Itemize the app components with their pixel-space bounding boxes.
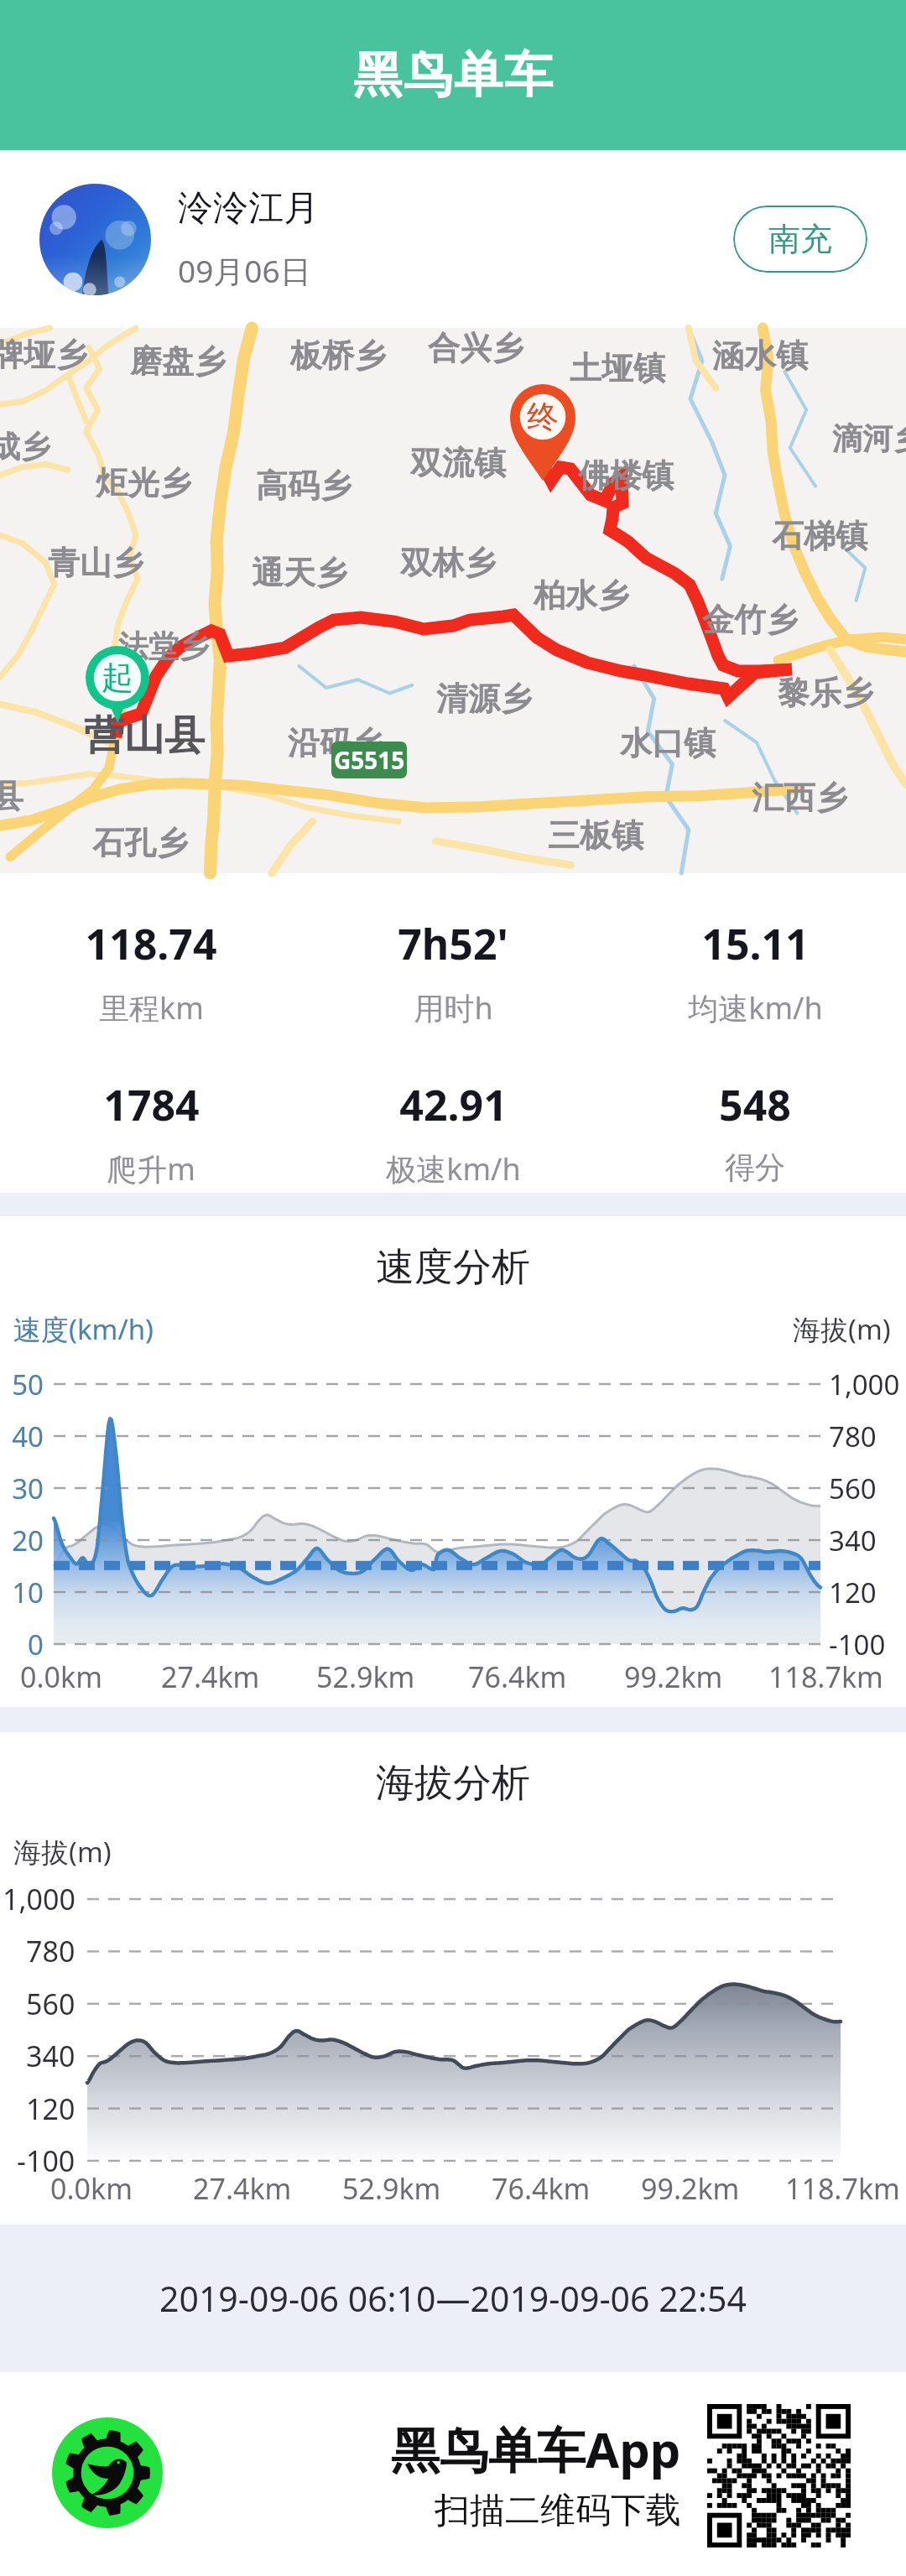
staticText: 终 [527,397,559,437]
staticText: 爬升m [107,1148,195,1189]
staticText: 磨盘乡 [130,341,226,382]
staticText: 0.0km [50,2169,133,2208]
staticText: 20 [12,1522,44,1559]
staticText: 27.4km [161,1657,260,1696]
button[interactable]: 118.74 [0,915,302,1028]
staticText: 滴河乡 [832,419,906,457]
staticText: -100 [829,1626,886,1663]
staticText: 52.9km [316,1657,415,1696]
staticText: 118.74 [85,915,217,972]
staticText: 金竹乡 [702,600,798,640]
staticText: 土垭镇 [570,348,665,388]
staticText: 柏水乡 [534,575,629,616]
other: 二维码 [707,2404,851,2547]
staticText: 780 [26,1932,75,1970]
staticText: 118.7km [785,2169,900,2208]
staticText: 76.4km [468,1657,567,1696]
staticText: 340 [829,1522,877,1559]
staticText: 三板镇 [548,815,643,856]
button[interactable]: 1784 [0,1076,302,1189]
staticText: 42.91 [399,1076,508,1133]
staticText: 09月06日 [178,249,311,292]
staticText: 涵水镇 [712,336,808,376]
staticText: 青山乡 [48,543,143,583]
staticText: 黑鸟单车 [352,44,554,106]
staticText: 清源乡 [436,679,532,719]
staticText: 1,000 [3,1880,75,1918]
staticText: 118.7km [768,1657,883,1696]
staticText: 石孔乡 [92,823,188,863]
staticText: 99.2km [624,1657,723,1696]
button[interactable]: 7h52' [302,915,604,1028]
staticText: 速度分析 [376,1243,530,1292]
button[interactable]: 黑鸟单车 logo [52,2417,163,2528]
staticText: 52.9km [342,2169,441,2208]
staticText: 海拔(m) [13,1833,112,1871]
staticText: 里程km [99,987,204,1028]
staticText: 99.2km [641,2169,740,2208]
staticText: 泠泠江月 [178,186,319,231]
staticText: 黎乐乡 [778,673,873,713]
staticText: 合兴乡 [428,328,523,368]
staticText: 成乡 [0,428,50,466]
staticText: 120 [829,1574,877,1611]
staticText: 1784 [103,1076,200,1133]
staticText: 27.4km [193,2169,292,2208]
staticText: 780 [829,1418,877,1455]
button[interactable]: 15.11 [604,915,906,1028]
staticText: 沿码乡 [288,723,383,763]
button[interactable]: 泠泠江月 [0,150,906,328]
staticText: 牌垭乡 [0,335,87,375]
staticText: 黑鸟单车App [391,2416,681,2482]
staticText: 2019-09-06 06:10—2019-09-06 22:54 [159,2275,747,2322]
staticText: 120 [26,2089,75,2128]
staticText: 佛楼镇 [578,455,674,496]
staticText: 548 [719,1076,791,1133]
staticText: 极速km/h [386,1148,521,1189]
staticText: 10 [12,1574,44,1611]
staticText: 汇西乡 [752,778,847,818]
staticText: -100 [17,2141,75,2180]
staticText: 县 [0,776,23,816]
button[interactable]: 终点 [510,384,575,481]
staticText: 高码乡 [256,466,351,506]
staticText: 起 [102,658,133,698]
staticText: 76.4km [492,2169,591,2208]
staticText: 50 [12,1366,44,1403]
button[interactable]: 牌垭乡 [0,328,906,873]
staticText: 0.0km [20,1657,102,1696]
button[interactable]: 548 [604,1076,906,1186]
staticText: 30 [12,1470,44,1507]
staticText: 速度(km/h) [13,1310,154,1348]
staticText: 海拔分析 [376,1759,530,1808]
staticText: 双流镇 [410,443,506,483]
button[interactable]: 起点 [86,646,149,723]
staticText: 560 [829,1470,877,1507]
staticText: 560 [26,1985,75,2023]
button[interactable]: 42.91 [302,1076,604,1189]
staticText: 得分 [725,1148,785,1186]
staticText: 双林乡 [400,543,496,583]
staticText: 法堂乡 [118,627,209,665]
staticText: G5515 [334,744,405,776]
staticText: 0 [28,1626,44,1663]
staticText: 1,000 [829,1366,900,1403]
staticText: 7h52' [398,915,508,972]
staticText: 炬光乡 [96,463,191,503]
staticText: 石梯镇 [772,516,867,556]
staticText: 南充 [768,219,832,259]
staticText: 340 [26,2037,75,2075]
staticText: 通天乡 [252,553,347,593]
staticText: 用时h [414,987,493,1028]
staticText: 海拔(m) [793,1310,891,1348]
staticText: 15.11 [701,915,810,972]
staticText: 板桥乡 [290,336,386,376]
staticText: 营山县 [84,710,205,761]
staticText: 均速km/h [688,987,823,1028]
button[interactable]: 南充 [733,206,867,273]
staticText: 40 [12,1418,44,1455]
staticText: 水口镇 [620,723,716,763]
staticText: 扫描二维码下载 [435,2489,681,2533]
